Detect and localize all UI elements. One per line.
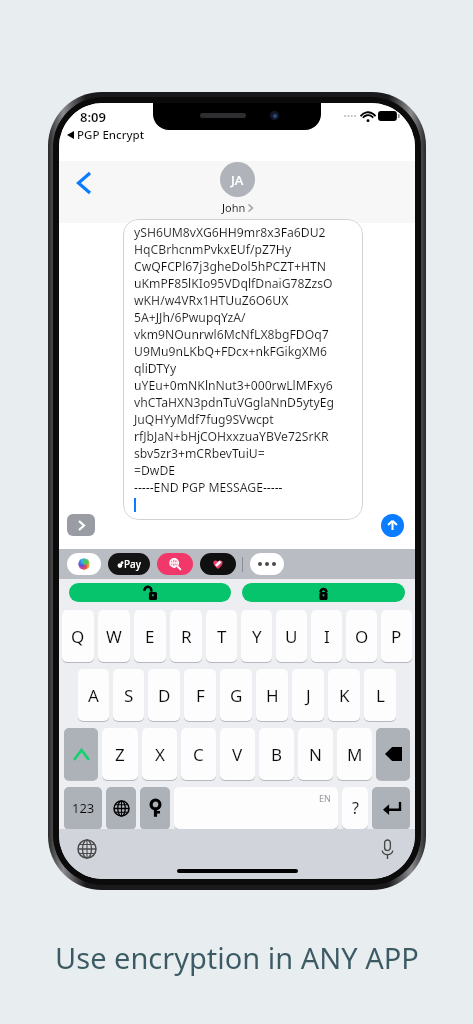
- button[interactable]: V: [220, 728, 255, 780]
- staticText: X: [155, 743, 165, 766]
- staticText: vkm9NOunrwl6McNfLX8bgFDOq7: [134, 326, 329, 343]
- staticText: ySH6UM8vXG6HH9mr8x3Fa6DU2: [134, 224, 326, 241]
- staticText: A: [88, 684, 99, 707]
- button[interactable]: L: [364, 669, 396, 721]
- staticText: J: [306, 684, 311, 707]
- button[interactable]: Back: [63, 163, 103, 203]
- button[interactable]: Encrypt: [242, 583, 405, 602]
- staticText: S: [124, 684, 134, 707]
- staticText: -----END PGP MESSAGE-----: [134, 479, 283, 496]
- staticText: John: [222, 200, 246, 215]
- staticText: uYEu+0mNKlnNut3+000rwLlMFxy6: [134, 377, 333, 394]
- button[interactable]: Question mark: [342, 787, 368, 829]
- button[interactable]: Key: [140, 787, 170, 829]
- staticText: G: [230, 684, 243, 707]
- button[interactable]: Change keyboard: [71, 833, 103, 865]
- staticText: JuQHYyMdf7fug9SVwcpt: [134, 411, 274, 428]
- staticText: Q: [71, 625, 85, 648]
- button[interactable]: Space: [174, 787, 338, 829]
- staticText: Pay: [124, 557, 142, 571]
- button[interactable]: Shift: [64, 728, 98, 780]
- staticText: sbv5zr3+mCRbevTuiU=: [134, 445, 265, 462]
- staticText: JA: [231, 171, 244, 189]
- button[interactable]: JA: [220, 162, 255, 215]
- staticText: F: [196, 684, 205, 707]
- staticText: I: [324, 625, 330, 648]
- staticText: T: [217, 625, 227, 648]
- staticText: rfJbJaN+bHjCOHxxzuaYBVe72SrKR: [134, 428, 329, 445]
- button[interactable]: I: [311, 610, 342, 662]
- button[interactable]: E: [134, 610, 166, 662]
- button[interactable]: X: [142, 728, 177, 780]
- staticText: C: [193, 743, 204, 766]
- button[interactable]: Y: [241, 610, 272, 662]
- staticText: R: [181, 625, 192, 648]
- button[interactable]: D: [148, 669, 180, 721]
- staticText: uKmPF85lKIo95VDqlfDnaiG78ZzsO: [134, 275, 333, 292]
- button[interactable]: C: [181, 728, 216, 780]
- staticText: 123: [72, 799, 95, 817]
- button[interactable]: M: [337, 728, 372, 780]
- button[interactable]: J: [292, 669, 324, 721]
- staticText: vhCTaHXN3pdnTuVGglaNnD5ytyEg: [134, 394, 334, 411]
- button[interactable]: Z: [102, 728, 138, 780]
- button[interactable]: More apps: [250, 553, 284, 575]
- staticText: U: [285, 625, 298, 648]
- staticText: PGP Encrypt: [77, 127, 145, 143]
- button[interactable]: O: [346, 610, 377, 662]
- staticText: K: [339, 684, 350, 707]
- button[interactable]: Dictate: [371, 833, 403, 865]
- staticText: U9Mu9nLKbQ+FDcx+nkFGikgXM6: [134, 343, 327, 360]
- button[interactable]: Change language: [106, 787, 136, 829]
- staticText: CwQFCPl67j3gheDol5hPCZT+HTN: [134, 258, 327, 275]
- staticText: EN: [319, 792, 331, 804]
- staticText: =DwDE: [134, 462, 176, 479]
- button[interactable]: Decrypt: [69, 583, 231, 602]
- button[interactable]: Search web: [157, 553, 193, 575]
- staticText: Y: [252, 625, 262, 648]
- button[interactable]: Return: [372, 787, 410, 829]
- button[interactable]: ySH6UM8vXG6HH9mr8x3Fa6DU2: [123, 219, 363, 520]
- staticText: P: [391, 625, 402, 648]
- staticText: 8:09: [80, 108, 106, 126]
- staticText: wKH/w4VRx1HTUuZ6O6UX: [134, 292, 289, 309]
- button[interactable]: U: [276, 610, 307, 662]
- staticText: N: [309, 743, 322, 766]
- button[interactable]: Photos: [67, 553, 101, 575]
- button[interactable]: Send: [381, 514, 404, 537]
- staticText: O: [355, 625, 369, 648]
- button[interactable]: G: [220, 669, 252, 721]
- button[interactable]: Apple Pay: [108, 553, 150, 575]
- button[interactable]: K: [328, 669, 360, 721]
- button[interactable]: S: [113, 669, 144, 721]
- staticText: 5A+JJh/6PwupqYzA/: [134, 309, 246, 326]
- button[interactable]: Fitness: [200, 553, 236, 575]
- button[interactable]: Show apps: [67, 514, 95, 536]
- staticText: H: [266, 684, 279, 707]
- staticText: B: [271, 743, 283, 766]
- staticText: D: [158, 684, 171, 707]
- staticText: ?: [352, 797, 359, 819]
- staticText: Z: [115, 743, 125, 766]
- button[interactable]: N: [298, 728, 333, 780]
- button[interactable]: Backspace: [376, 728, 410, 780]
- button[interactable]: F: [184, 669, 216, 721]
- button[interactable]: P: [381, 610, 412, 662]
- button[interactable]: T: [206, 610, 237, 662]
- staticText: HqCBrhcnmPvkxEUf/pZ7Hy: [134, 241, 292, 258]
- button[interactable]: Numbers: [64, 787, 102, 829]
- button[interactable]: R: [170, 610, 202, 662]
- staticText: qliDTYy: [134, 360, 177, 377]
- staticText: Use encryption in ANY APP: [55, 938, 419, 977]
- staticText: L: [376, 684, 385, 707]
- button[interactable]: H: [256, 669, 288, 721]
- staticText: E: [145, 625, 155, 648]
- button[interactable]: A: [78, 669, 109, 721]
- button[interactable]: Q: [62, 610, 94, 662]
- staticText: M: [347, 743, 363, 766]
- button[interactable]: W: [98, 610, 130, 662]
- staticText: W: [106, 625, 122, 648]
- staticText: V: [232, 743, 243, 766]
- button[interactable]: B: [259, 728, 294, 780]
